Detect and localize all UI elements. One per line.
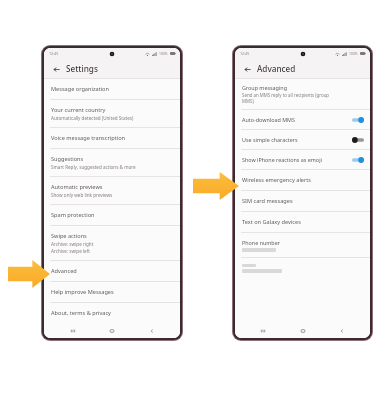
staticText: 100% [159, 51, 168, 56]
button[interactable]: Group messaging [235, 79, 370, 110]
staticText: Send an MMS reply to all recipients (gro… [242, 92, 330, 98]
button[interactable]: Back [141, 324, 163, 338]
staticText: Suggestions [51, 155, 84, 163]
staticText: 12:45 [240, 51, 250, 56]
button[interactable]: Show iPhone reactions as emoji [235, 150, 370, 170]
staticText: Auto-download MMS [242, 116, 349, 123]
staticText: MMS) [242, 98, 254, 104]
staticText: Show only web link previews [51, 192, 113, 198]
staticText: Wireless emergency alerts [242, 176, 311, 184]
staticText: Show iPhone reactions as emoji [242, 156, 349, 163]
staticText: Message organization [51, 85, 109, 93]
staticText: Smart Reply, suggested actions & more [51, 164, 136, 170]
staticText: Archive: swipe left [51, 248, 90, 254]
button[interactable]: Help improve Messages [44, 282, 180, 303]
button[interactable]: Text on Galaxy devices [235, 212, 370, 233]
staticText: Automatic previews [51, 183, 103, 191]
button[interactable]: Message organization [44, 79, 180, 100]
staticText: Phone number [242, 239, 280, 246]
staticText: 12:45 [49, 51, 59, 56]
staticText: Your current country [51, 106, 106, 114]
staticText: Settings [66, 63, 98, 74]
staticText: Help improve Messages [51, 288, 114, 296]
button[interactable]: Auto-download MMS [235, 110, 370, 130]
button[interactable]: Voice message transcription [44, 128, 180, 149]
button[interactable]: Recents [252, 324, 274, 338]
staticText: Advanced [51, 267, 77, 275]
staticText: Voice message transcription [51, 134, 125, 142]
button[interactable]: Back [331, 324, 353, 338]
button[interactable]: Home [292, 324, 314, 338]
button[interactable]: Recents [62, 324, 84, 338]
staticText: Group messaging [242, 84, 287, 91]
button[interactable]: SIM card messages [235, 191, 370, 212]
button[interactable]: Spam protection [44, 205, 180, 226]
staticText: 100% [349, 51, 358, 56]
staticText: Text on Galaxy devices [242, 218, 301, 226]
button[interactable]: Home [101, 324, 123, 338]
button[interactable]: About, terms & privacy [44, 303, 180, 323]
button[interactable] [235, 258, 370, 279]
staticText: Swipe actions [51, 232, 87, 240]
staticText: Advanced [257, 63, 296, 74]
button[interactable]: Your current country [44, 100, 180, 128]
staticText: Use simple characters [242, 136, 349, 143]
staticText: SIM card messages [242, 197, 293, 205]
staticText: Spam protection [51, 211, 95, 219]
button[interactable]: Use simple characters [235, 130, 370, 150]
button[interactable]: Suggestions [44, 149, 180, 177]
staticText: About, terms & privacy [51, 309, 111, 317]
button[interactable]: Advanced [44, 261, 180, 282]
button[interactable]: Phone number [235, 233, 370, 258]
button[interactable]: Back [50, 63, 62, 75]
button[interactable]: Wireless emergency alerts [235, 170, 370, 191]
staticText: Archive: swipe right [51, 241, 94, 247]
button[interactable]: Swipe actions [44, 226, 180, 261]
staticText: Automatically detected (United States) [51, 115, 134, 121]
button[interactable]: Automatic previews [44, 177, 180, 205]
button[interactable]: Back [241, 63, 253, 75]
